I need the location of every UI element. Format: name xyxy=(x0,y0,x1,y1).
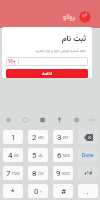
staticText: 2 xyxy=(32,133,37,142)
staticText: 7 xyxy=(6,169,11,178)
button[interactable]: Voice input xyxy=(51,112,68,128)
button[interactable]: Emoji xyxy=(17,112,34,128)
button[interactable]: 98+ xyxy=(6,57,88,66)
staticText: +*# xyxy=(84,170,93,176)
staticText: Done xyxy=(82,152,94,158)
staticText: 8 xyxy=(32,169,37,178)
staticText: , xyxy=(87,188,89,195)
staticText: 0 xyxy=(34,187,39,196)
staticText: ادامه xyxy=(42,70,53,78)
button[interactable]: ادامه xyxy=(6,69,88,78)
staticText: روکو xyxy=(63,12,76,23)
button[interactable]: 3 xyxy=(53,130,73,144)
staticText: لطفا شماره موبایل خود را وارد نمایید xyxy=(6,48,86,54)
staticText: 98+ xyxy=(8,59,16,64)
button[interactable]: 9 xyxy=(53,166,73,180)
staticText: # xyxy=(61,187,66,196)
button[interactable]: 4 xyxy=(3,148,23,162)
button[interactable]: 2 xyxy=(28,130,48,144)
button[interactable]: 8 xyxy=(28,166,48,180)
staticText: 3 xyxy=(57,133,62,142)
staticText: 1 xyxy=(11,133,16,142)
staticText: DEF xyxy=(63,136,69,140)
button[interactable]: dot xyxy=(78,184,98,198)
button[interactable]: back xyxy=(78,130,98,144)
staticText: WXYZ xyxy=(62,172,71,176)
staticText: MNO xyxy=(63,154,70,158)
button[interactable]: sym xyxy=(78,166,98,180)
staticText: + xyxy=(40,190,42,194)
staticText: 4 xyxy=(8,151,13,160)
staticText: TUV xyxy=(38,172,44,176)
button[interactable]: done xyxy=(78,148,98,162)
button[interactable]: 1 xyxy=(3,130,23,144)
button[interactable]: 5 xyxy=(28,148,48,162)
button[interactable]: Themes xyxy=(0,112,17,128)
staticText: 6 xyxy=(57,151,62,160)
button[interactable]: Settings xyxy=(68,112,85,128)
staticText: JKL xyxy=(38,154,44,158)
button[interactable]: More options xyxy=(85,112,100,128)
button[interactable]: Translate xyxy=(34,112,51,128)
button[interactable]: 6 xyxy=(53,148,73,162)
staticText: * xyxy=(11,187,15,196)
staticText: 9 xyxy=(56,169,61,178)
staticText: ABC xyxy=(38,136,44,140)
button[interactable]: 0 xyxy=(28,184,48,198)
staticText: ثبت نام xyxy=(6,33,86,46)
staticText: PQRS xyxy=(12,172,20,176)
staticText: GHI xyxy=(14,154,19,158)
button[interactable]: * xyxy=(3,184,23,198)
button[interactable]: # xyxy=(53,184,73,198)
button[interactable]: 7 xyxy=(3,166,23,180)
staticText: 5 xyxy=(32,151,37,160)
